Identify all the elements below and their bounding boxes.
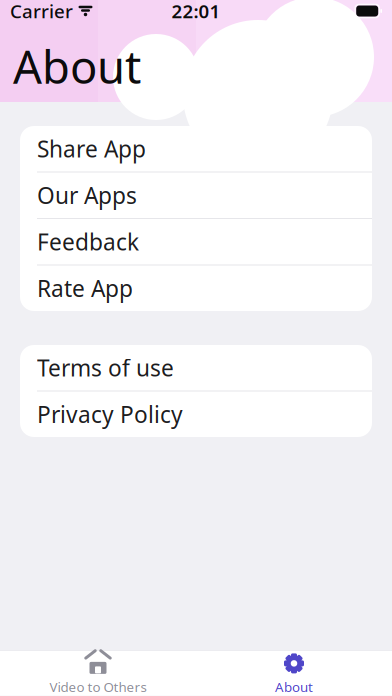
button[interactable]: Privacy Policy xyxy=(20,391,372,437)
button[interactable]: Video to Others xyxy=(0,652,196,696)
staticText: 22:01 xyxy=(171,0,220,23)
button[interactable]: Rate App xyxy=(20,265,372,311)
button[interactable]: Terms of use xyxy=(20,345,372,390)
button[interactable]: Feedback xyxy=(20,219,372,264)
staticText: Privacy Policy xyxy=(37,399,183,429)
staticText: Rate App xyxy=(37,273,133,303)
button[interactable]: About xyxy=(196,652,392,696)
staticText: Our Apps xyxy=(37,180,137,210)
staticText: Video to Others xyxy=(49,678,146,696)
staticText: Carrier xyxy=(10,0,73,23)
staticText: About xyxy=(13,36,141,96)
staticText: Share App xyxy=(37,134,146,164)
staticText: About xyxy=(275,678,313,696)
staticText: Terms of use xyxy=(37,353,174,383)
staticText: Feedback xyxy=(37,227,139,257)
button[interactable]: Our Apps xyxy=(20,172,372,218)
button[interactable]: Share App xyxy=(20,126,372,171)
